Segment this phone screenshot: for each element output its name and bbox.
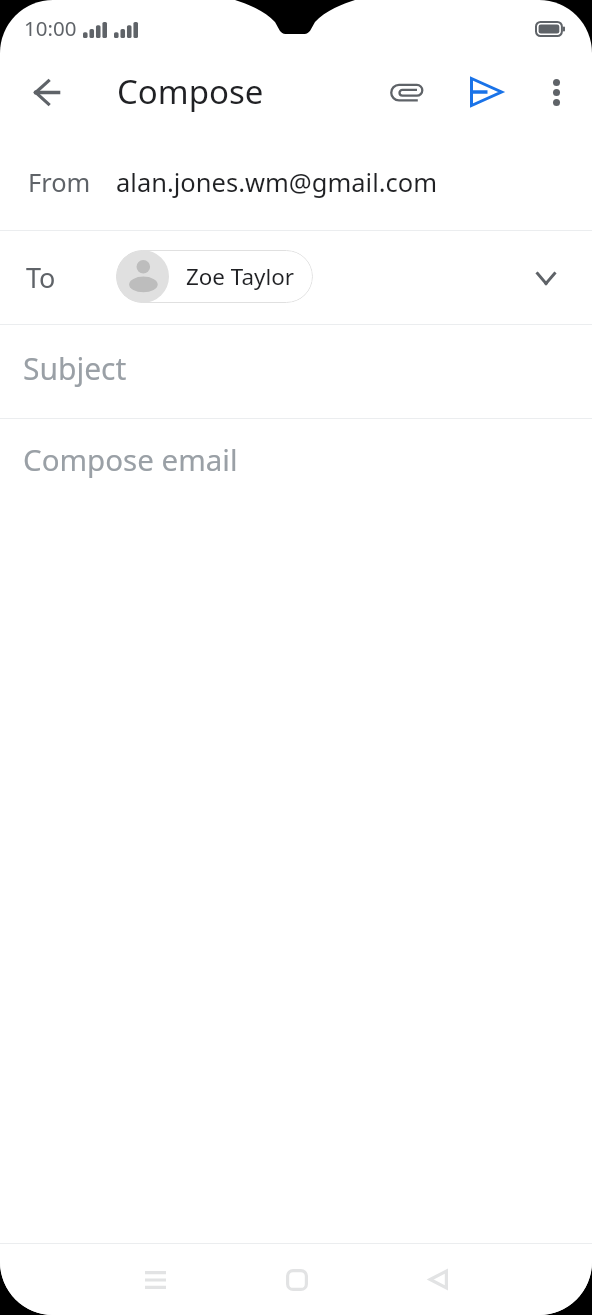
button[interactable]: From bbox=[0, 140, 592, 230]
button[interactable]: Zoe Taylor bbox=[116, 250, 313, 303]
button[interactable]: Home bbox=[226, 1244, 367, 1315]
staticText: Zoe Taylor bbox=[186, 261, 295, 292]
staticText: Subject bbox=[23, 348, 127, 389]
staticText: From bbox=[28, 165, 91, 200]
button[interactable]: Send bbox=[451, 57, 521, 127]
button[interactable]: Navigate up bbox=[12, 56, 84, 128]
button[interactable]: Attach file bbox=[373, 58, 443, 128]
button[interactable]: Compose email bbox=[0, 419, 592, 512]
staticText: To bbox=[26, 259, 56, 296]
staticText: Compose email bbox=[23, 439, 238, 479]
button[interactable]: Recent apps bbox=[85, 1244, 226, 1315]
button[interactable]: More options bbox=[524, 60, 588, 124]
staticText: 10:00 bbox=[24, 14, 77, 42]
button[interactable]: Back bbox=[367, 1244, 508, 1315]
staticText: Compose bbox=[117, 69, 264, 114]
staticText: alan.jones.wm@gmail.com bbox=[116, 165, 438, 200]
button[interactable]: Subject bbox=[0, 325, 592, 418]
button[interactable]: Show more recipients bbox=[522, 254, 570, 302]
